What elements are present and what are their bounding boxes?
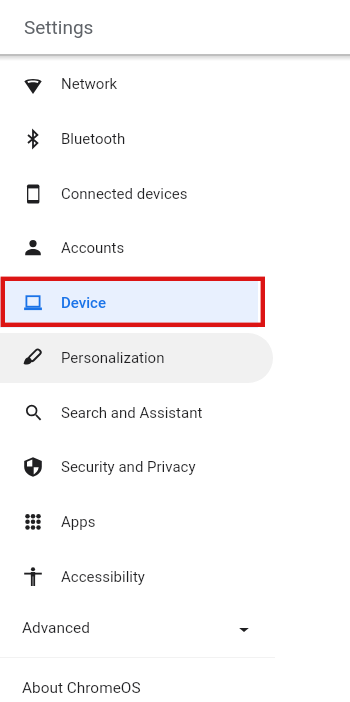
button[interactable]: About ChromeOS xyxy=(0,663,350,702)
staticText: Search and Assistant xyxy=(61,404,203,422)
other: Expand advanced xyxy=(238,623,250,635)
button[interactable]: Device xyxy=(0,278,258,328)
button[interactable]: Search and Assistant xyxy=(0,388,273,438)
button[interactable]: Security and Privacy xyxy=(0,442,273,492)
staticText: Apps xyxy=(61,513,96,531)
staticText: Accounts xyxy=(61,239,125,257)
button[interactable]: Apps xyxy=(0,497,273,547)
staticText: Settings xyxy=(24,16,94,38)
staticText: Advanced xyxy=(22,619,90,637)
staticText: Connected devices xyxy=(61,185,188,203)
staticText: About ChromeOS xyxy=(22,679,141,697)
button[interactable]: Bluetooth xyxy=(0,114,273,164)
button[interactable]: Accounts xyxy=(0,223,273,273)
button[interactable]: Network xyxy=(0,59,273,109)
button[interactable]: Accessibility xyxy=(0,552,273,602)
staticText: Security and Privacy xyxy=(61,458,196,476)
staticText: Accessibility xyxy=(61,568,145,586)
button[interactable]: Settings xyxy=(0,0,350,53)
staticText: Bluetooth xyxy=(61,130,126,148)
button[interactable]: Personalization xyxy=(0,333,273,383)
staticText: Personalization xyxy=(61,349,165,367)
button[interactable]: Connected devices xyxy=(0,169,273,219)
staticText: Device xyxy=(61,294,106,312)
button[interactable]: Advanced xyxy=(0,603,350,653)
staticText: Network xyxy=(61,75,118,93)
